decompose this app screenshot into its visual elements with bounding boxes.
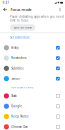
- staticText: Slack: [11, 94, 16, 98]
- staticText: Pause distracting apps when you need tim…: [10, 15, 64, 22]
- button[interactable]: Set a schedule: [0, 32, 65, 43]
- staticText: Reminders: [11, 56, 26, 60]
- button[interactable]: More options: [56, 5, 64, 13]
- staticText: Keep Notes: [11, 115, 28, 118]
- staticText: Set a schedule: [10, 36, 30, 39]
- staticText: Google: [11, 104, 22, 108]
- button[interactable]: Slack: [0, 91, 65, 101]
- button[interactable]: Keep Notes: [0, 111, 65, 122]
- staticText: NOT DISTRACTING: [10, 86, 33, 89]
- button[interactable]: Google: [0, 101, 65, 111]
- staticText: Chrome Dev: [11, 125, 27, 129]
- button[interactable]: Turn on now: [10, 24, 35, 31]
- staticText: Turn on now: [14, 26, 32, 29]
- staticText: Twitter: [11, 77, 20, 80]
- button[interactable]: Subtitles: [0, 63, 65, 73]
- button[interactable]: Chrome Dev: [0, 122, 65, 130]
- button[interactable]: Back: [1, 5, 10, 13]
- button[interactable]: Twitter: [0, 73, 65, 84]
- staticText: 9:41: [2, 1, 9, 4]
- button[interactable]: Reminders: [0, 53, 65, 63]
- staticText: Bixby: [11, 46, 18, 49]
- staticText: Subtitles: [11, 66, 23, 70]
- button[interactable]: Bixby: [0, 43, 65, 53]
- staticText: Focus mode: [11, 7, 32, 12]
